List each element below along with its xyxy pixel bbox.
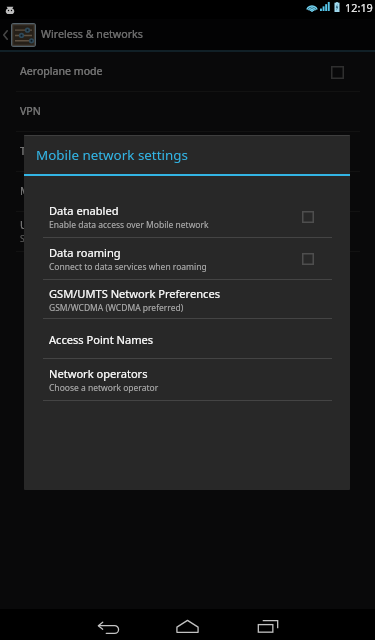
other: Aeroplane mode checkbox: [331, 66, 344, 79]
button[interactable]: Access Point Names: [24, 319, 350, 359]
staticText: Tethering & portable hotspot: [20, 144, 165, 158]
other: Settings: [11, 23, 36, 47]
staticText: Choose a network operator: [49, 382, 159, 394]
button[interactable]: GSM/UMTS Network Preferences: [24, 280, 350, 319]
staticText: Share Windows PC Internet: [20, 233, 129, 245]
button[interactable]: Recent apps: [252, 609, 283, 640]
staticText: Enable data access over Mobile network: [49, 219, 209, 231]
button[interactable]: VPN: [0, 92, 375, 132]
button[interactable]: Data enabled: [24, 196, 350, 238]
button[interactable]: USB Internet: [0, 212, 375, 252]
staticText: Mobile network settings: [36, 146, 188, 164]
staticText: Aeroplane mode: [20, 64, 103, 78]
staticText: Data enabled: [49, 203, 119, 218]
staticText: Network operators: [49, 366, 148, 381]
staticText: Mobile networks: [20, 184, 103, 198]
staticText: 12:19: [345, 0, 373, 15]
staticText: GSM/UMTS Network Preferences: [49, 286, 220, 301]
other: Data roaming checkbox: [302, 253, 314, 265]
staticText: USB Internet: [20, 218, 84, 232]
button[interactable]: Aeroplane mode: [0, 52, 375, 92]
staticText: Access Point Names: [49, 332, 154, 347]
button[interactable]: Home: [172, 609, 203, 640]
other: Data enabled checkbox: [302, 211, 314, 223]
button[interactable]: Data roaming: [24, 238, 350, 280]
staticText: Data roaming: [49, 245, 121, 260]
staticText: GSM/WCDMA (WCDMA preferred): [49, 302, 184, 314]
staticText: VPN: [20, 104, 41, 118]
button[interactable]: Up: [0, 19, 11, 50]
button[interactable]: Mobile networks: [0, 172, 375, 212]
button[interactable]: Network operators: [24, 359, 350, 401]
button[interactable]: Tethering & portable hotspot: [0, 132, 375, 172]
button[interactable]: Back: [92, 609, 123, 640]
staticText: Connect to data services when roaming: [49, 261, 207, 273]
staticText: Wireless & networks: [41, 27, 143, 42]
